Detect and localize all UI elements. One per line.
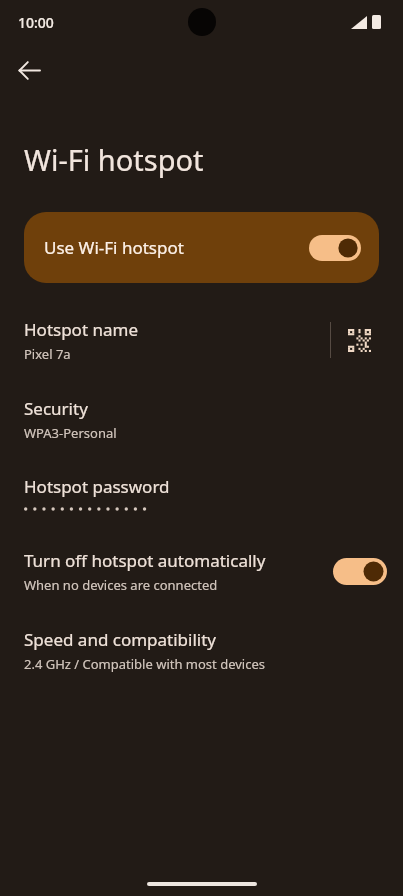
staticText: Use Wi-Fi hotspot xyxy=(44,236,309,259)
button[interactable]: Turn off hotspot automatically xyxy=(0,517,403,598)
staticText: Pixel 7a xyxy=(24,345,71,363)
button[interactable]: Security xyxy=(0,372,403,446)
button[interactable]: Use Wi-Fi hotspot xyxy=(24,212,379,283)
staticText: 2.4 GHz / Compatible with most devices xyxy=(24,655,265,673)
staticText: Speed and compatibility xyxy=(24,628,217,651)
staticText: Hotspot password xyxy=(24,475,170,498)
staticText: Wi-Fi hotspot xyxy=(24,140,204,179)
staticText: Turn off hotspot automatically xyxy=(24,549,266,572)
staticText: WPA3-Personal xyxy=(24,424,117,442)
button[interactable]: Hotspot name xyxy=(0,312,403,372)
button[interactable]: Back xyxy=(3,44,55,96)
staticText: Security xyxy=(24,397,88,420)
staticText: When no devices are connected xyxy=(24,576,218,594)
staticText: Hotspot name xyxy=(24,318,138,341)
staticText: 10:00 xyxy=(18,13,54,32)
button[interactable]: Hotspot password xyxy=(0,446,403,517)
button[interactable]: Share hotspot QR code xyxy=(331,312,387,368)
other: Share hotspot QR code xyxy=(348,329,371,352)
button[interactable]: Speed and compatibility xyxy=(0,598,403,677)
